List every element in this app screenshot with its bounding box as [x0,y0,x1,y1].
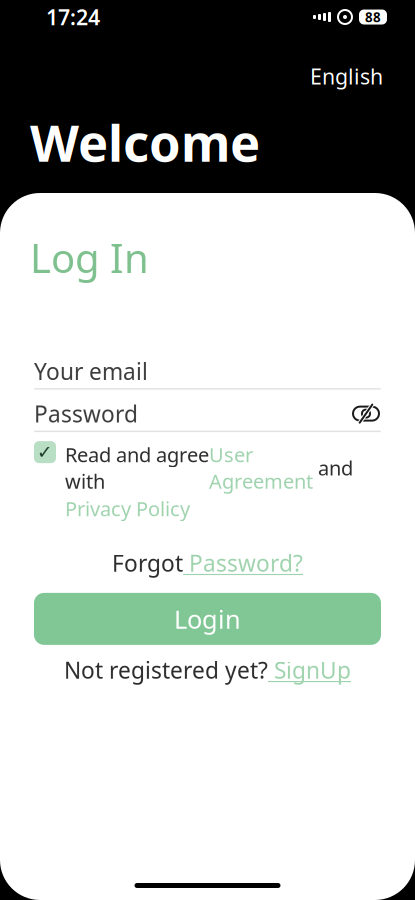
staticText: SignUp [268,655,351,685]
staticText: Not registered yet? [64,655,268,685]
button[interactable]: Forgot [112,548,303,578]
button[interactable]: English [304,58,389,94]
staticText: Forgot [112,548,183,578]
staticText: ✓ [37,441,53,463]
button[interactable]: Not registered yet? [64,655,351,685]
staticText: Password? [183,548,303,578]
staticText: Read and agree with [65,441,209,494]
staticText: Login [174,602,241,636]
staticText: English [310,62,383,90]
staticText: Log In [30,231,149,284]
staticText: 17:24 [46,3,100,31]
button[interactable]: Login [34,593,381,645]
staticText: and [313,454,353,481]
staticText: Your email [34,356,148,386]
staticText: Password [34,399,138,429]
staticText: Privacy Policy [65,495,190,522]
staticText: Welcome [30,108,260,176]
staticText: User Agreement [209,441,313,494]
button[interactable]: Show password [351,402,381,426]
staticText: 88 [365,8,381,26]
button[interactable]: Agree to terms [34,441,56,463]
